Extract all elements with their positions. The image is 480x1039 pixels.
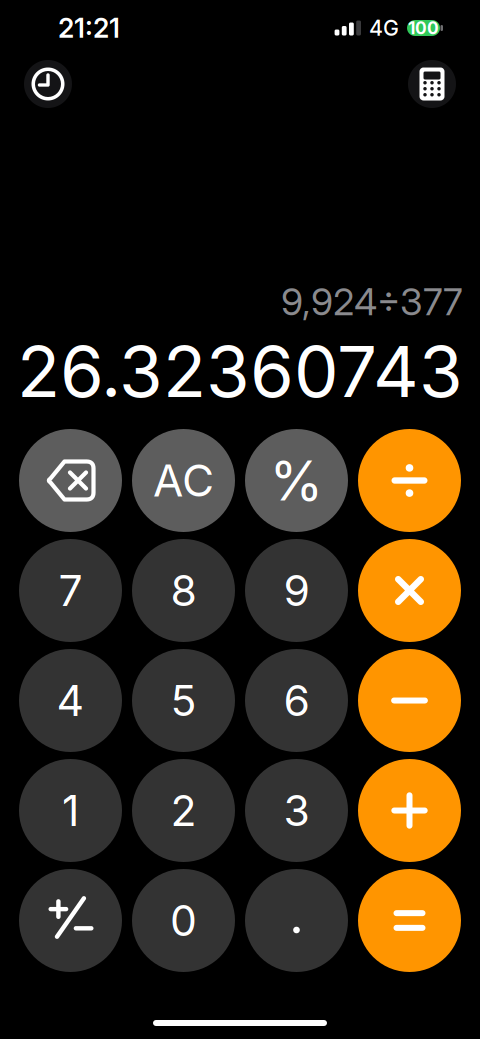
staticText: 4 xyxy=(56,675,84,726)
button[interactable]: History xyxy=(24,60,72,108)
button[interactable]: AC xyxy=(132,429,235,532)
staticText: 4G xyxy=(369,15,399,41)
button[interactable]: % xyxy=(245,429,348,532)
staticText: 5 xyxy=(170,675,196,726)
button[interactable]: Divide xyxy=(358,429,461,532)
staticText: 21:21 xyxy=(58,12,120,44)
staticText: % xyxy=(269,448,323,513)
button[interactable]: 5 xyxy=(132,649,235,752)
staticText: 9 xyxy=(283,565,309,616)
staticText: 7 xyxy=(58,565,82,616)
button[interactable]: 6 xyxy=(245,649,348,752)
button[interactable]: Delete xyxy=(19,429,122,532)
staticText: 100 xyxy=(408,18,439,38)
button[interactable]: 7 xyxy=(19,539,122,642)
staticText: 1 xyxy=(62,785,79,836)
staticText: 8 xyxy=(170,565,196,616)
staticText: 0 xyxy=(170,895,197,946)
button[interactable]: Plus xyxy=(358,759,461,862)
button[interactable]: 8 xyxy=(132,539,235,642)
staticText: 3 xyxy=(283,785,309,836)
staticText: AC xyxy=(153,454,214,506)
button[interactable]: Multiply xyxy=(358,539,461,642)
button[interactable]: Minus xyxy=(358,649,461,752)
button[interactable]: 9 xyxy=(245,539,348,642)
button[interactable]: 3 xyxy=(245,759,348,862)
staticText: 2 xyxy=(170,785,196,836)
staticText: 9,924÷377 xyxy=(281,280,463,324)
button[interactable]: Decimal point xyxy=(245,869,348,972)
staticText: 26.32360743 xyxy=(17,330,463,413)
staticText: 6 xyxy=(283,675,309,726)
button[interactable]: Toggle sign xyxy=(19,869,122,972)
button[interactable]: 1 xyxy=(19,759,122,862)
button[interactable]: 2 xyxy=(132,759,235,862)
button[interactable]: 4 xyxy=(19,649,122,752)
button[interactable]: 0 xyxy=(132,869,235,972)
button[interactable]: Equals xyxy=(358,869,461,972)
button[interactable]: Calculator mode xyxy=(408,60,456,108)
